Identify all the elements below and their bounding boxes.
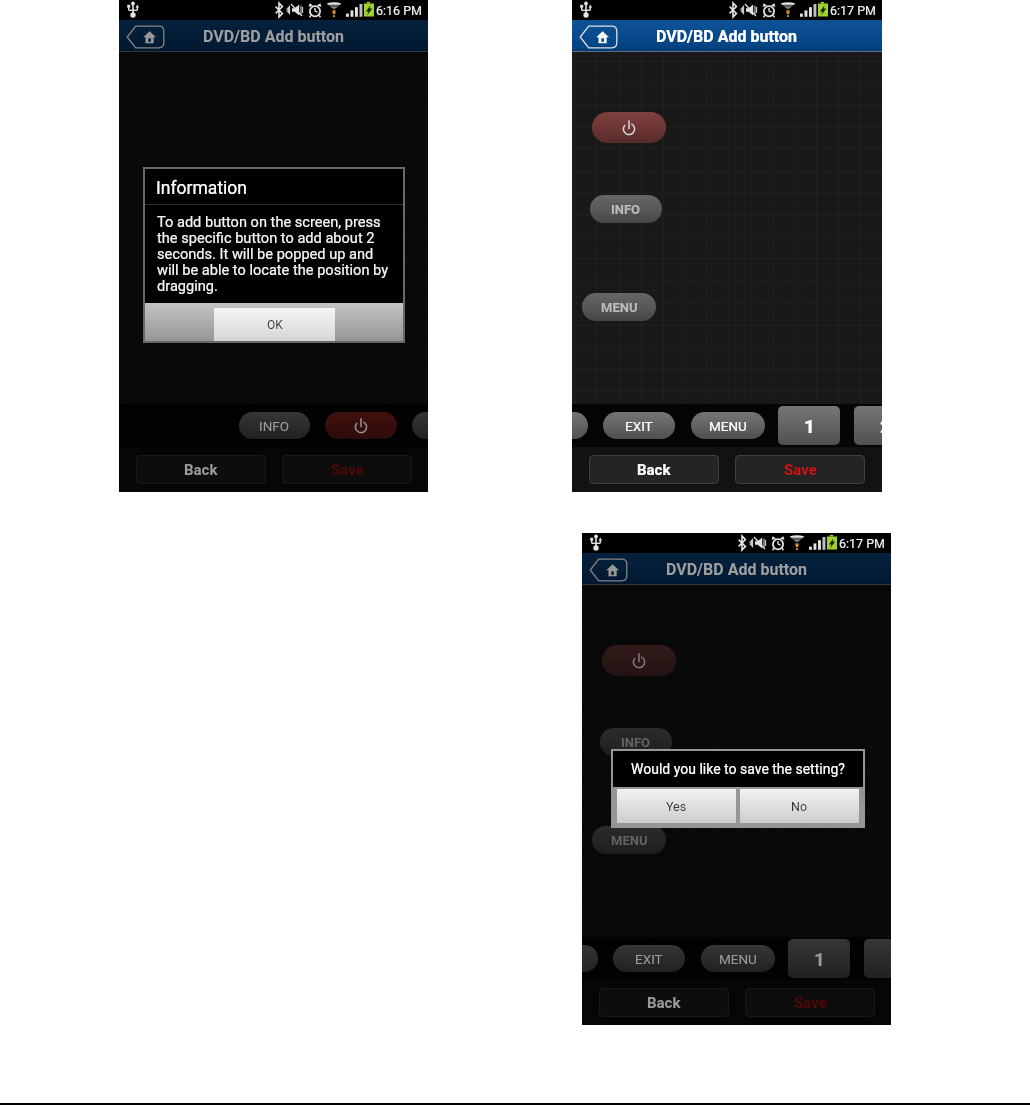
button[interactable]: Back [599, 988, 729, 1017]
button[interactable]: Power [602, 645, 676, 676]
staticText: 6:16 PM [376, 3, 423, 18]
button[interactable]: MENU [592, 826, 666, 854]
button[interactable]: No [740, 789, 859, 823]
staticText: Would you like to save the setting? [631, 761, 845, 777]
staticText: INFO [621, 735, 651, 750]
button[interactable]: EXIT [613, 945, 685, 972]
button[interactable]: MENU [582, 293, 656, 321]
staticText: Back [647, 994, 681, 1012]
button[interactable]: Back [136, 455, 266, 484]
button[interactable]: INFO [600, 728, 672, 756]
staticText: MENU [601, 300, 638, 315]
button[interactable]: Home [126, 25, 165, 49]
button[interactable]: OK [214, 308, 335, 341]
staticText: Back [184, 461, 218, 479]
staticText: DVD/BD Add button [203, 27, 345, 46]
staticText: Save [331, 461, 364, 479]
button[interactable]: MENU [691, 412, 765, 439]
button[interactable]: Save [282, 455, 412, 484]
button[interactable]: Previous remote button [582, 945, 598, 972]
staticText: No [791, 799, 808, 814]
button[interactable]: Previous remote button [572, 412, 588, 439]
staticText: Yes [666, 799, 687, 814]
staticText: 6:17 PM [830, 3, 877, 18]
button[interactable]: Home [589, 558, 628, 582]
staticText: MENU [709, 418, 747, 434]
staticText: 2 [880, 415, 882, 437]
staticText: DVD/BD Add button [656, 27, 798, 46]
staticText: Information [156, 178, 247, 199]
button[interactable]: 2 [864, 939, 891, 978]
button[interactable]: Back [589, 455, 719, 484]
button[interactable]: Save [745, 988, 875, 1017]
button[interactable]: INFO [590, 195, 662, 223]
staticText: MENU [611, 833, 648, 848]
button[interactable]: Save [735, 455, 865, 484]
button[interactable]: 2 [854, 406, 882, 445]
staticText: Back [637, 461, 671, 479]
staticText: INFO [259, 418, 290, 434]
staticText: EXIT [635, 951, 663, 967]
button[interactable]: MENU [701, 945, 775, 972]
button[interactable]: Home [579, 25, 618, 49]
button[interactable]: 1 [788, 939, 850, 978]
button[interactable]: INFO [239, 412, 310, 439]
staticText: EXIT [625, 418, 653, 434]
button[interactable]: Power [325, 412, 397, 439]
staticText: MENU [719, 951, 757, 967]
button[interactable]: EXIT [603, 412, 675, 439]
staticText: 1 [814, 948, 825, 970]
staticText: 1 [804, 415, 815, 437]
button[interactable]: Yes [617, 789, 736, 823]
button[interactable]: Power [592, 112, 666, 143]
staticText: 2 [890, 948, 891, 970]
staticText: OK [267, 318, 283, 332]
button[interactable]: 1 [778, 406, 840, 445]
staticText: INFO [611, 202, 641, 217]
staticText: DVD/BD Add button [666, 560, 808, 579]
staticText: Save [794, 994, 827, 1012]
staticText: 6:17 PM [839, 536, 886, 551]
staticText: To add button on the screen, press the s… [157, 213, 391, 294]
staticText: Save [784, 461, 817, 479]
button[interactable]: Next remote button [412, 412, 428, 439]
